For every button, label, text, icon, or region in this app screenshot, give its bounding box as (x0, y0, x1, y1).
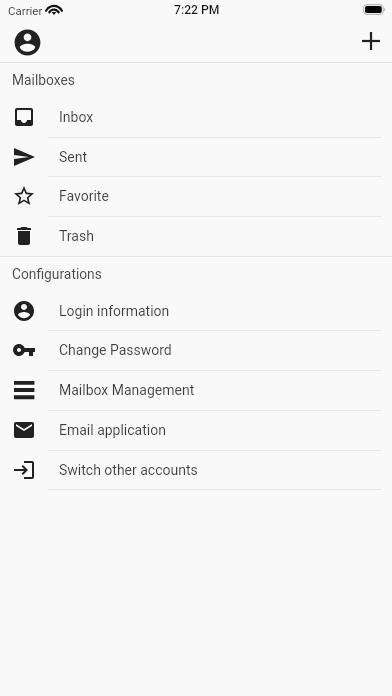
staticText: Mailboxes (12, 72, 75, 88)
staticText: Trash (59, 228, 94, 244)
button[interactable]: Switch other accounts (0, 450, 392, 489)
button[interactable]: Favorite (0, 176, 392, 216)
button[interactable]: Login information (0, 291, 392, 330)
staticText: Inbox (59, 109, 94, 125)
staticText: Mailbox Management (59, 382, 195, 398)
staticText: Email application (59, 422, 166, 438)
button[interactable]: Trash (0, 216, 392, 256)
button[interactable]: Account (10, 24, 44, 58)
staticText: Change Password (59, 342, 172, 358)
button[interactable]: Sent (0, 137, 392, 176)
staticText: Switch other accounts (59, 462, 198, 478)
staticText: 7:22 PM (174, 3, 220, 17)
button[interactable]: Mailbox Management (0, 370, 392, 410)
staticText: Carrier (8, 4, 43, 17)
staticText: Configurations (12, 266, 102, 282)
button[interactable]: Inbox (0, 97, 392, 137)
staticText: Sent (59, 149, 88, 165)
button[interactable]: Add (354, 24, 388, 58)
staticText: Login information (59, 303, 170, 319)
button[interactable]: Email application (0, 410, 392, 450)
button[interactable]: Change Password (0, 330, 392, 370)
staticText: Favorite (59, 188, 109, 204)
